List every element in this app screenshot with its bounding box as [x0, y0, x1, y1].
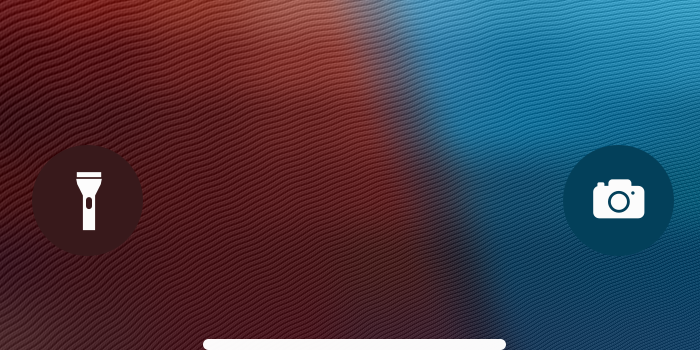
- button[interactable]: Flashlight: [32, 145, 143, 256]
- button[interactable]: Camera: [563, 145, 674, 256]
